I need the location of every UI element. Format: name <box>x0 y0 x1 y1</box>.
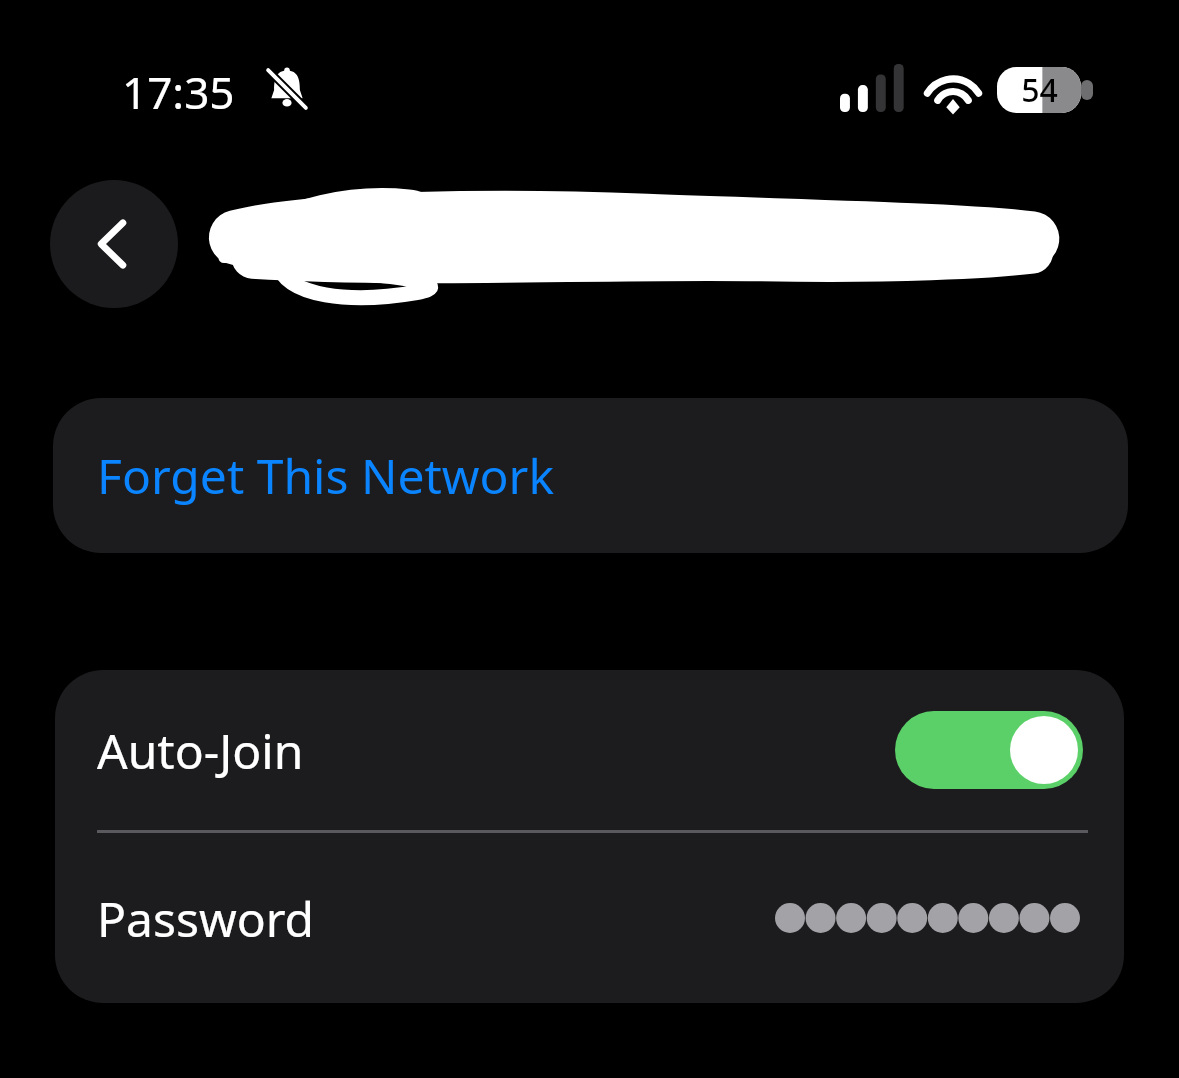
button[interactable]: Password <box>55 833 1124 1003</box>
button[interactable]: Back <box>50 180 178 308</box>
staticText: 54 <box>1021 68 1058 112</box>
staticText: Forget This Network <box>97 443 555 508</box>
button[interactable]: Auto-Join <box>55 670 1124 830</box>
staticText: Auto-Join <box>97 718 304 783</box>
staticText: 17:35 <box>122 62 235 122</box>
staticText: Password <box>97 886 315 951</box>
button[interactable]: Forget This Network <box>53 398 1128 553</box>
button[interactable]: Auto-Join toggle, on <box>895 711 1083 789</box>
